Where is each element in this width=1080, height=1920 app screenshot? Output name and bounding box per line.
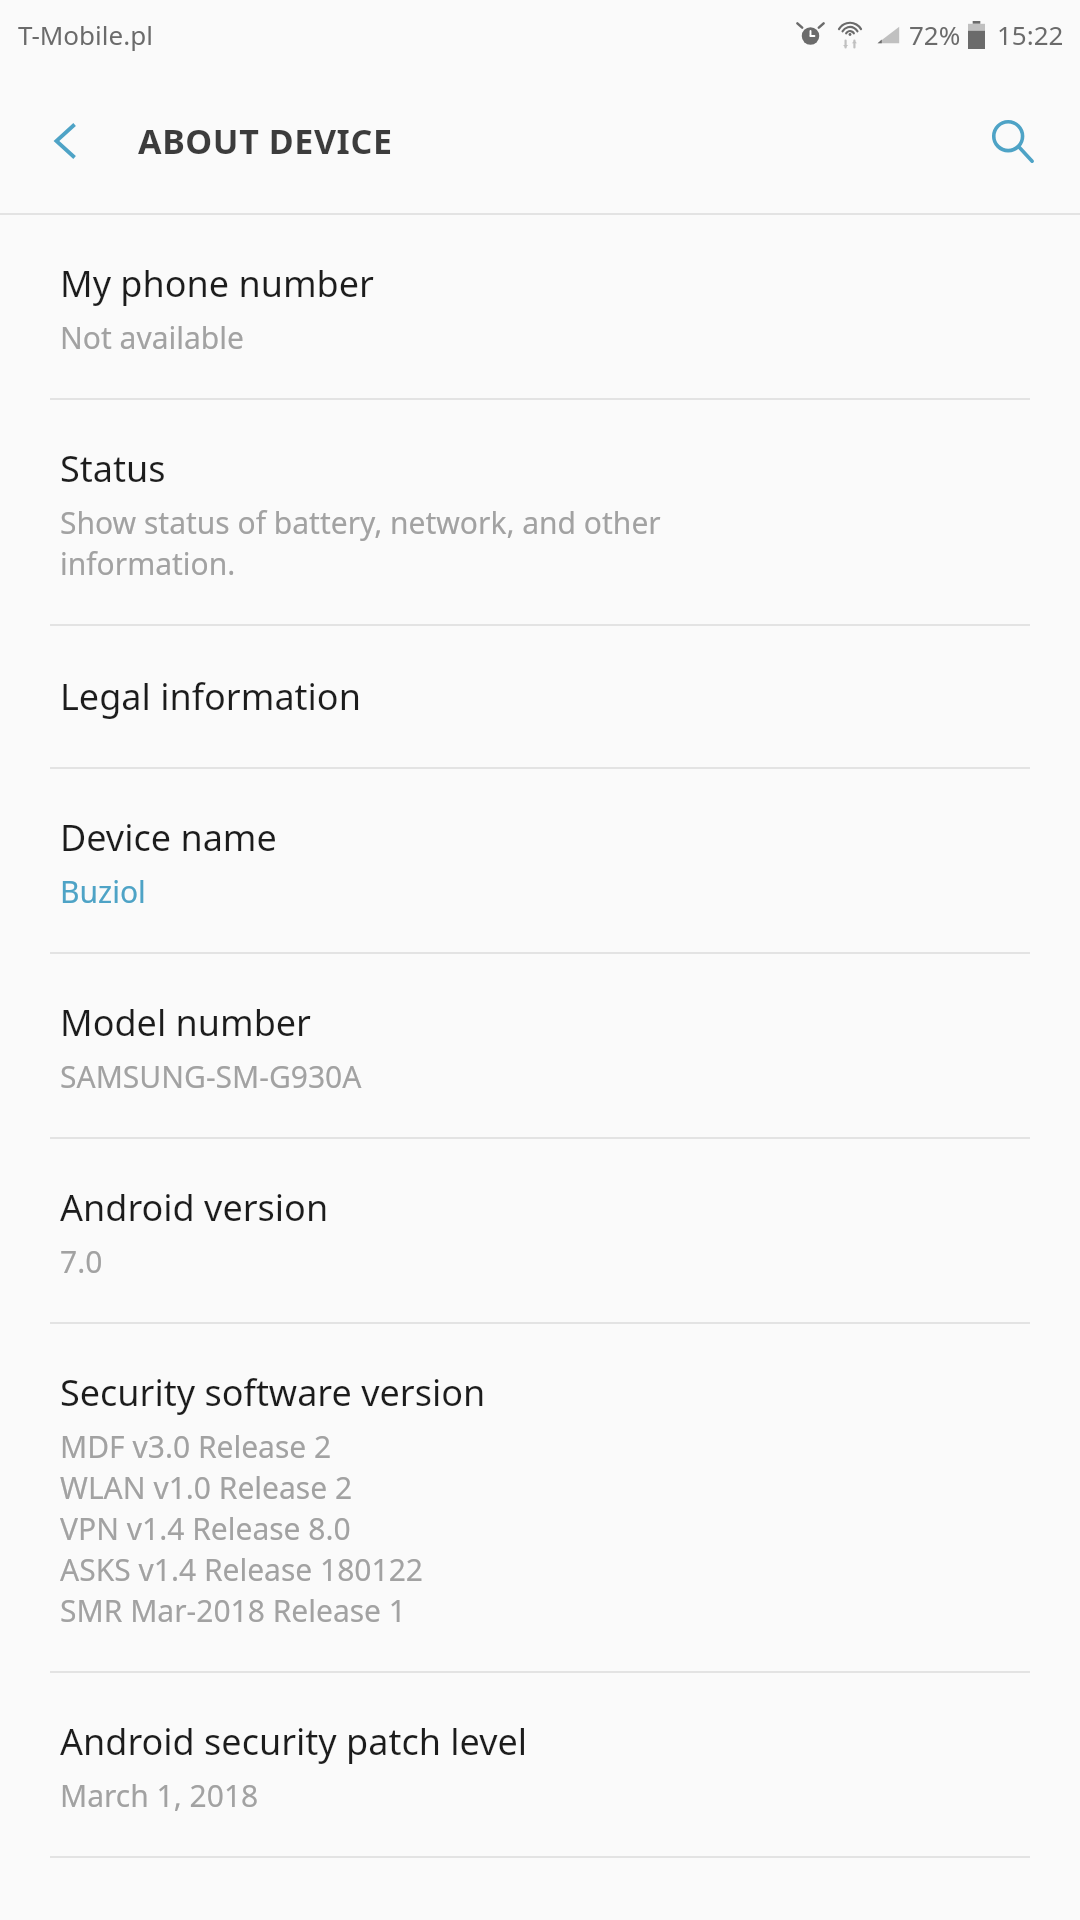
button[interactable]: My phone number [0,215,1080,398]
staticText: Buziol [60,871,146,912]
staticText: information. [60,543,236,584]
button[interactable]: Android version [0,1139,1080,1322]
staticText: My phone number [60,259,374,308]
staticText: SAMSUNG-SM-G930A [60,1056,362,1097]
staticText: Status [60,444,166,493]
staticText: WLAN v1.0 Release 2 [60,1467,353,1508]
staticText: VPN v1.4 Release 8.0 [60,1508,351,1549]
staticText: 72% [909,17,961,52]
staticText: March 1, 2018 [60,1775,259,1816]
staticText: T-Mobile.pl [18,17,153,52]
staticText: 7.0 [60,1241,103,1282]
staticText: ASKS v1.4 Release 180122 [60,1549,423,1590]
button[interactable]: Legal information [0,626,1080,767]
staticText: Device name [60,813,277,862]
button[interactable]: Back [30,105,102,177]
staticText: Android version [60,1183,329,1232]
staticText: ABOUT DEVICE [138,118,393,164]
staticText: Legal information [60,672,361,721]
staticText: Security software version [60,1368,486,1417]
button[interactable]: Device name [0,769,1080,952]
button[interactable]: Status [0,400,1080,624]
staticText: SMR Mar-2018 Release 1 [60,1590,406,1631]
staticText: Model number [60,998,311,1047]
button[interactable]: Search [974,103,1050,179]
button[interactable]: Model number [0,954,1080,1137]
staticText: Show status of battery, network, and oth… [60,502,661,543]
staticText: Android security patch level [60,1717,528,1766]
staticText: 15:22 [997,17,1064,52]
staticText: MDF v3.0 Release 2 [60,1426,332,1467]
button[interactable]: Android security patch level [0,1673,1080,1856]
staticText: Not available [60,317,244,358]
button[interactable]: Security software version [0,1324,1080,1671]
